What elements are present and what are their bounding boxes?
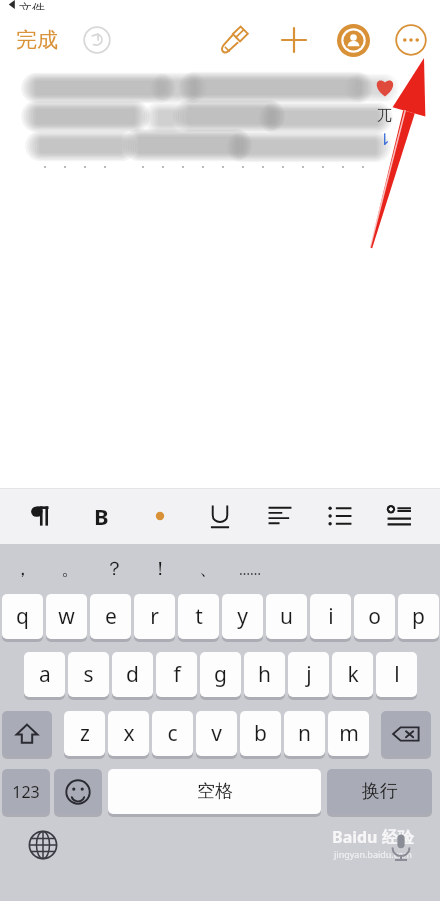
staticText: j — [306, 660, 312, 689]
staticText: a — [39, 660, 51, 689]
button[interactable]: j — [288, 652, 329, 697]
staticText: d — [126, 660, 139, 689]
button[interactable]: w — [46, 594, 87, 639]
staticText: 兀 — [377, 106, 392, 125]
staticText: q — [16, 602, 29, 631]
button[interactable]: o — [354, 594, 395, 639]
staticText: n — [298, 719, 311, 748]
staticText: ？ — [105, 557, 124, 581]
staticText: w — [58, 602, 75, 631]
button[interactable]: t — [178, 594, 219, 639]
staticText: jingyan.baidu.com — [334, 848, 412, 860]
staticText: Baidu 经验 — [332, 826, 414, 848]
button[interactable]: c — [152, 711, 193, 756]
staticText: u — [280, 602, 293, 631]
button[interactable]: e — [90, 594, 131, 639]
button[interactable]: f — [156, 652, 197, 697]
staticText: b — [254, 719, 267, 748]
staticText: v — [211, 719, 222, 748]
staticText: h — [258, 660, 271, 689]
button[interactable]: b — [240, 711, 281, 756]
button[interactable]: Bold — [78, 493, 124, 539]
staticText: y — [237, 602, 248, 631]
button[interactable]: p — [398, 594, 439, 639]
staticText: ！ — [151, 557, 170, 581]
staticText: l — [394, 660, 400, 689]
staticText: 。 — [61, 557, 80, 581]
button[interactable]: 、 — [186, 544, 230, 594]
button[interactable]: s — [68, 652, 109, 697]
staticText: 、 — [199, 557, 218, 581]
button[interactable]: y — [222, 594, 263, 639]
button[interactable]: Brush — [213, 19, 255, 61]
button[interactable]: Backspace — [381, 711, 431, 756]
staticText: z — [80, 719, 90, 748]
button[interactable]: 。 — [48, 544, 92, 594]
button[interactable]: q — [2, 594, 43, 639]
button[interactable]: Undo — [78, 21, 116, 59]
button[interactable]: Underline — [197, 493, 243, 539]
button[interactable]: Paragraph mark — [18, 493, 64, 539]
button[interactable]: 空格 — [108, 769, 321, 814]
staticText: c — [167, 719, 178, 748]
button[interactable]: Add — [273, 19, 315, 61]
staticText: e — [105, 602, 117, 631]
button[interactable]: More options — [390, 19, 432, 61]
button[interactable]: v — [196, 711, 237, 756]
button[interactable]: h — [244, 652, 285, 697]
button[interactable]: Shift — [2, 711, 52, 756]
button[interactable]: g — [200, 652, 241, 697]
button[interactable]: Change keyboard — [22, 824, 64, 866]
button[interactable]: x — [108, 711, 149, 756]
button[interactable]: 完成 — [10, 21, 64, 59]
staticText: m — [339, 719, 359, 748]
button[interactable]: Text color — [137, 493, 183, 539]
staticText: 换行 — [362, 780, 398, 803]
staticText: k — [347, 660, 359, 689]
staticText: i — [328, 602, 334, 631]
button[interactable]: Voice input — [380, 826, 422, 868]
button[interactable]: Align left — [257, 493, 303, 539]
staticText: ⇂ — [378, 130, 392, 149]
button[interactable]: 换行 — [327, 769, 432, 814]
button[interactable]: n — [284, 711, 325, 756]
button[interactable]: Emoji — [54, 769, 102, 814]
button[interactable]: Insert list item — [376, 493, 422, 539]
button[interactable]: m — [328, 711, 369, 756]
button[interactable]: Account — [332, 19, 374, 61]
button[interactable]: ？ — [92, 544, 136, 594]
button[interactable]: 123 — [2, 769, 50, 814]
staticText: x — [123, 719, 135, 748]
staticText: 完成 — [16, 27, 58, 53]
button[interactable]: u — [266, 594, 307, 639]
button[interactable]: ， — [0, 544, 44, 594]
button[interactable]: …… — [228, 544, 272, 594]
staticText: B — [94, 501, 109, 531]
staticText: 空格 — [197, 780, 233, 803]
staticText: 123 — [12, 781, 40, 803]
staticText: t — [195, 602, 203, 631]
staticText: r — [150, 602, 159, 631]
button[interactable]: l — [376, 652, 417, 697]
staticText: 文件 — [19, 0, 45, 10]
button[interactable]: z — [64, 711, 105, 756]
staticText: …… — [239, 560, 262, 579]
button[interactable]: k — [332, 652, 373, 697]
staticText: g — [214, 660, 227, 689]
staticText: p — [412, 602, 425, 631]
button[interactable]: a — [24, 652, 65, 697]
button[interactable]: ！ — [138, 544, 182, 594]
button[interactable]: d — [112, 652, 153, 697]
button[interactable]: r — [134, 594, 175, 639]
staticText: f — [173, 660, 181, 689]
staticText: ， — [13, 557, 32, 581]
staticText: s — [83, 660, 94, 689]
button[interactable]: Bulleted list — [317, 493, 363, 539]
staticText: o — [368, 602, 381, 631]
button[interactable]: i — [310, 594, 351, 639]
